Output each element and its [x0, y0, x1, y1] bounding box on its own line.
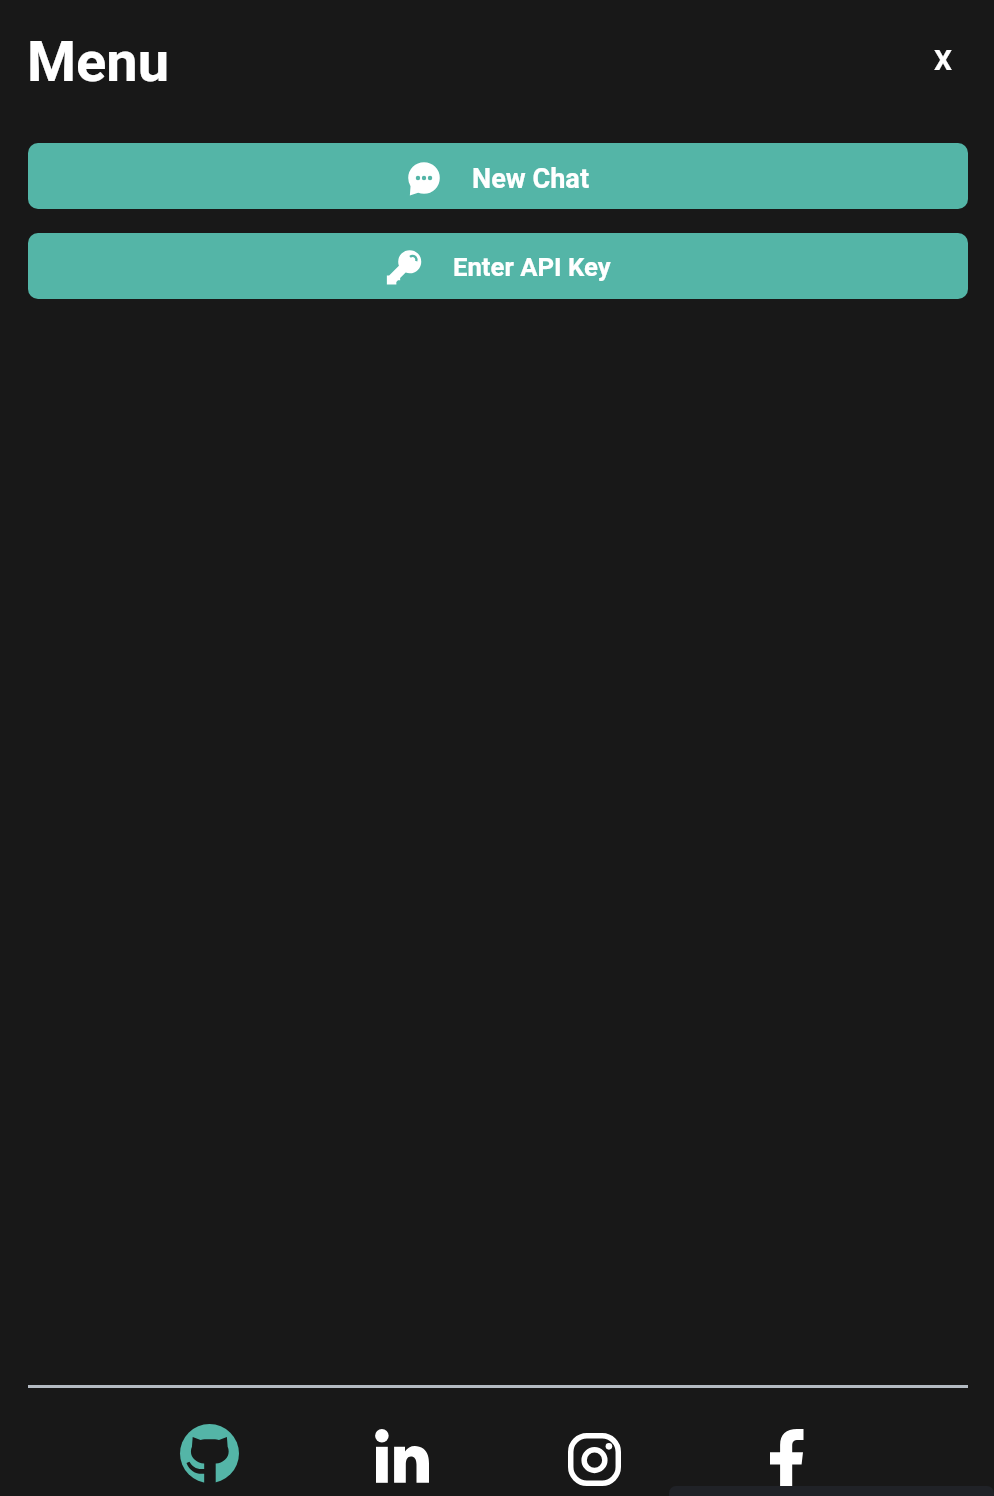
staticText: Enter API Key [453, 252, 611, 282]
button[interactable]: GitHub [159, 1405, 259, 1496]
button[interactable]: LinkedIn [352, 1408, 452, 1496]
staticText: New Chat [472, 163, 590, 195]
button[interactable]: Instagram [544, 1411, 644, 1496]
button[interactable]: New Chat [28, 143, 968, 209]
button[interactable]: Enter API Key [28, 233, 968, 299]
button[interactable]: Close [916, 33, 970, 87]
button[interactable]: Facebook [737, 1410, 837, 1496]
staticText: X [934, 44, 952, 77]
staticText: Menu [27, 29, 170, 95]
